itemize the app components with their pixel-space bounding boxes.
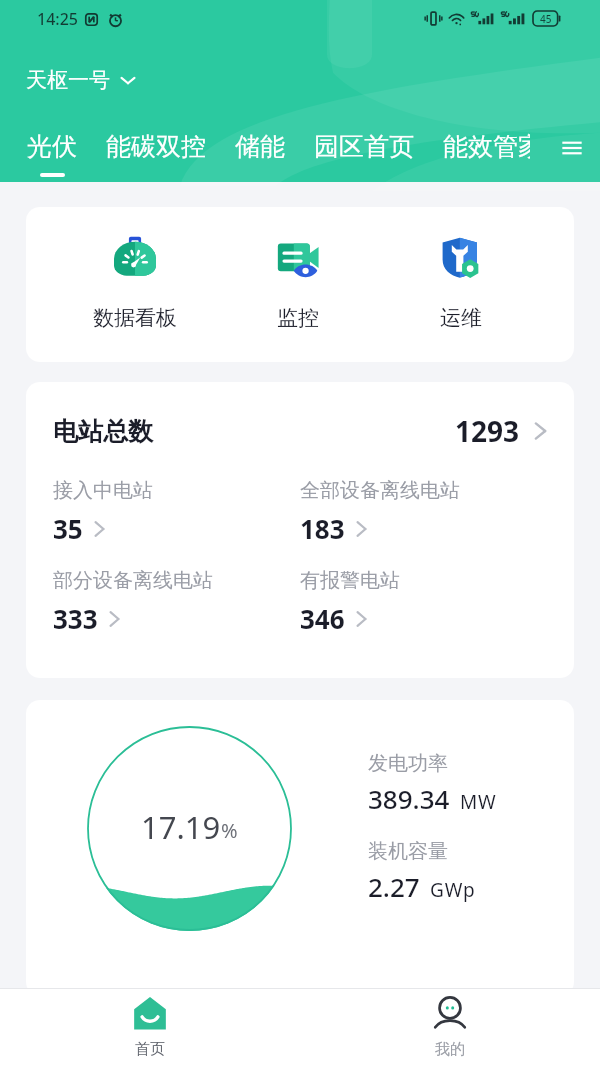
button[interactable]: 电站总数 <box>53 412 547 450</box>
button[interactable]: 天枢一号 <box>26 67 137 93</box>
button[interactable]: 监控 <box>243 233 353 348</box>
staticText: 14:25 <box>37 8 78 30</box>
staticText: 能效管家 <box>443 131 530 162</box>
staticText: 监控 <box>277 305 319 331</box>
staticText: 运维 <box>440 305 482 331</box>
staticText: GWp <box>430 877 476 903</box>
staticText: 全部设备离线电站 <box>300 478 460 503</box>
button[interactable]: 储能 <box>235 131 285 177</box>
button[interactable]: 首页 <box>0 989 300 1067</box>
staticText: 45 <box>540 12 552 26</box>
staticText: 装机容量 <box>368 839 448 864</box>
button[interactable]: 部分设备离线电站 <box>53 568 300 636</box>
staticText: 333 <box>53 601 98 636</box>
staticText: 接入中电站 <box>53 478 153 503</box>
staticText: 电站总数 <box>53 416 153 447</box>
button[interactable]: 发电功率 <box>368 751 497 816</box>
staticText: 183 <box>300 511 345 546</box>
staticText: 389.34 <box>368 781 450 816</box>
staticText: 35 <box>53 511 83 546</box>
button[interactable]: 有报警电站 <box>300 568 547 636</box>
staticText: % <box>221 817 238 844</box>
staticText: 部分设备离线电站 <box>53 568 213 593</box>
button[interactable]: 接入中电站 <box>53 478 300 546</box>
button[interactable]: 光伏 <box>27 131 77 177</box>
button[interactable]: 数据看板 <box>80 233 190 348</box>
staticText: 发电功率 <box>368 751 448 776</box>
staticText: 有报警电站 <box>300 568 400 593</box>
staticText: 储能 <box>235 131 285 162</box>
staticText: 1293 <box>455 412 520 450</box>
button[interactable]: 能碳双控 <box>106 131 206 177</box>
staticText: 园区首页 <box>314 131 414 162</box>
button[interactable]: 园区首页 <box>314 131 414 177</box>
button[interactable]: Menu <box>557 133 587 163</box>
staticText: 首页 <box>135 1040 165 1059</box>
staticText: 光伏 <box>27 131 77 162</box>
button[interactable]: 能效管家 <box>443 131 530 177</box>
button[interactable]: 我的 <box>300 989 600 1067</box>
button[interactable]: 全部设备离线电站 <box>300 478 547 546</box>
staticText: 我的 <box>435 1040 465 1059</box>
button[interactable]: 运维 <box>406 233 516 348</box>
staticText: 数据看板 <box>93 305 177 331</box>
staticText: 2.27 <box>368 869 420 904</box>
button[interactable]: 装机容量 <box>368 839 476 904</box>
staticText: 天枢一号 <box>26 67 110 93</box>
staticText: 346 <box>300 601 345 636</box>
staticText: MW <box>460 789 497 815</box>
staticText: 能碳双控 <box>106 131 206 162</box>
staticText: 17.19 <box>141 806 221 848</box>
